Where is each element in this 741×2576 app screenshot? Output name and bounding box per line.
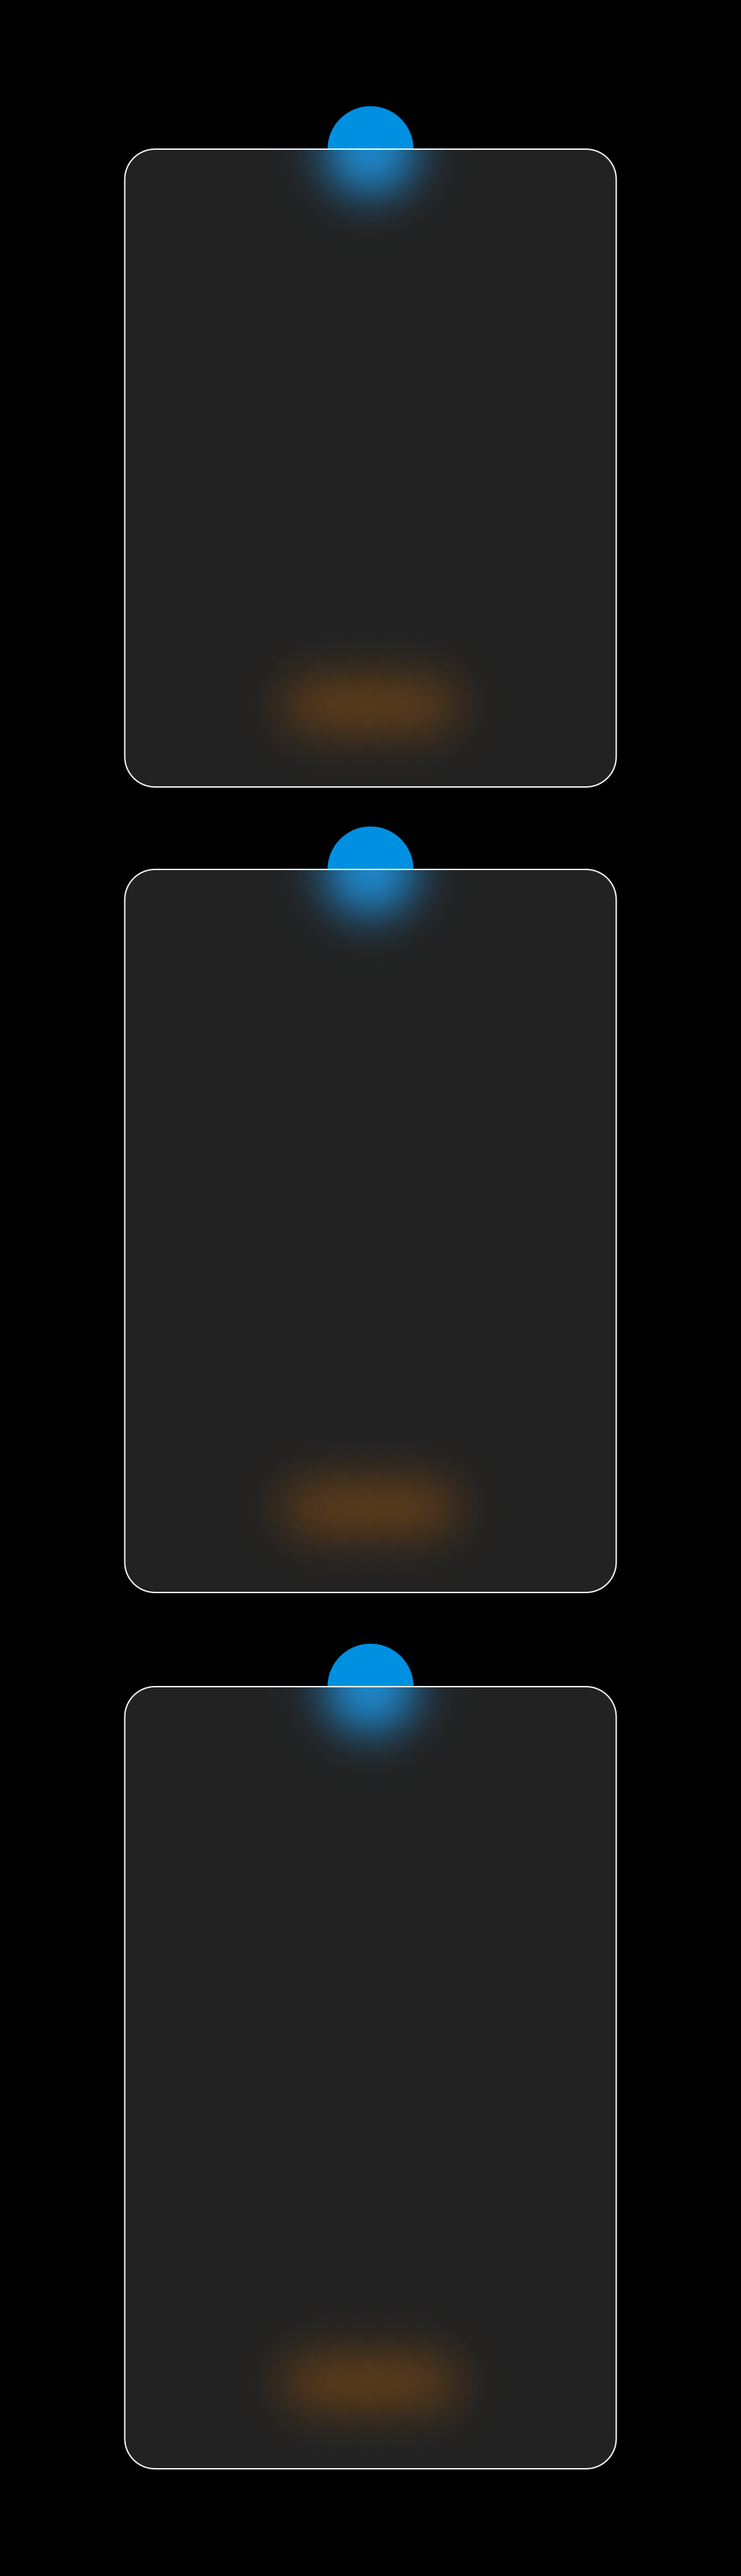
button[interactable] — [125, 1687, 616, 2469]
button[interactable] — [125, 149, 616, 787]
button[interactable] — [125, 869, 616, 1592]
